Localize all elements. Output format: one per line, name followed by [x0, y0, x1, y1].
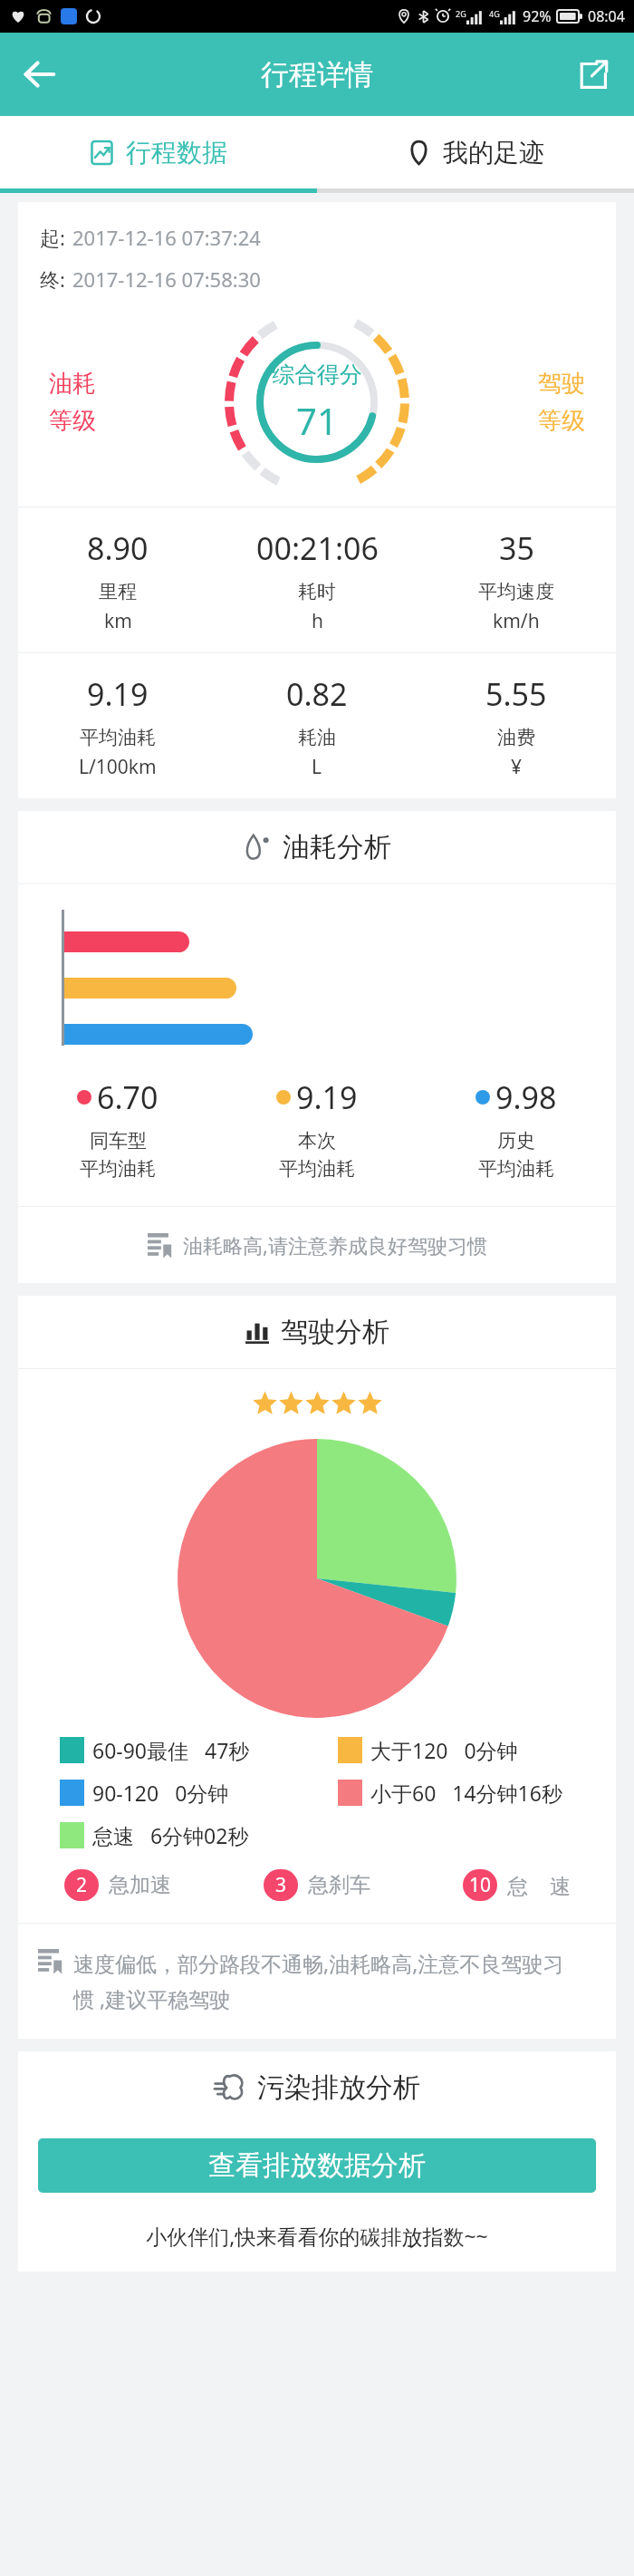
- staticText: 2: [76, 1872, 88, 1898]
- staticText: 9.19: [87, 673, 149, 715]
- staticText: 油费: [497, 726, 535, 749]
- staticText: ¥: [511, 754, 523, 780]
- staticText: 速度偏低，部分路段不通畅,油耗略高,注意不良驾驶习惯 ,建议平稳驾驶: [73, 1949, 594, 2013]
- staticText: 2017-12-16 07:58:30: [72, 265, 261, 293]
- staticText: L/100km: [79, 754, 157, 780]
- staticText: 急刹车: [308, 1872, 370, 1898]
- staticText: 本次: [298, 1129, 336, 1153]
- staticText: 等级: [49, 406, 96, 436]
- staticText: 平均速度: [478, 580, 554, 603]
- staticText: 油耗: [49, 369, 96, 399]
- button[interactable]: 我的足迹: [317, 116, 634, 188]
- staticText: 同车型: [90, 1129, 147, 1153]
- staticText: 60-90最佳 47秒: [92, 1736, 250, 1764]
- staticText: 平均油耗: [80, 726, 156, 749]
- staticText: h: [312, 608, 323, 634]
- staticText: 驾驶分析: [281, 1315, 389, 1349]
- staticText: 9.98: [495, 1076, 557, 1118]
- staticText: 2017-12-16 07:37:24: [72, 224, 261, 251]
- staticText: 怠 速: [507, 1871, 571, 1899]
- staticText: 油耗分析: [283, 830, 391, 864]
- staticText: 00:21:06: [256, 527, 379, 569]
- staticText: L: [312, 754, 322, 780]
- staticText: 污染排放分析: [257, 2070, 420, 2105]
- staticText: 我的足迹: [443, 137, 544, 169]
- staticText: 怠速 6分钟02秒: [92, 1821, 249, 1849]
- staticText: 驾驶: [538, 369, 585, 399]
- staticText: 3: [275, 1872, 287, 1898]
- staticText: 里程: [99, 580, 137, 603]
- staticText: 历史: [497, 1129, 535, 1153]
- staticText: 6.70: [97, 1076, 158, 1118]
- staticText: 平均油耗: [478, 1157, 554, 1181]
- button[interactable]: Back: [11, 46, 67, 102]
- staticText: 4G: [489, 8, 500, 19]
- staticText: 耗油: [298, 726, 336, 749]
- staticText: 小于60 14分钟16秒: [370, 1779, 562, 1807]
- button[interactable]: 行程数据: [0, 116, 317, 188]
- staticText: 行程详情: [261, 57, 373, 92]
- staticText: 等级: [538, 406, 585, 436]
- staticText: 8.90: [87, 527, 149, 569]
- staticText: 0.82: [286, 673, 348, 715]
- button[interactable]: Share: [565, 46, 621, 102]
- staticText: 急加速: [109, 1872, 171, 1898]
- staticText: 92%: [523, 6, 552, 26]
- staticText: 终:: [40, 265, 65, 293]
- staticText: 耗时: [298, 580, 336, 603]
- staticText: km: [104, 608, 132, 634]
- staticText: 10: [469, 1872, 492, 1898]
- staticText: 90-120 0分钟: [92, 1779, 229, 1807]
- staticText: 9.19: [296, 1076, 358, 1118]
- staticText: km/h: [493, 608, 540, 634]
- button[interactable]: 查看排放数据分析: [38, 2138, 596, 2193]
- staticText: 2G: [456, 8, 466, 19]
- staticText: 大于120 0分钟: [370, 1736, 518, 1764]
- staticText: 平均油耗: [279, 1157, 355, 1181]
- staticText: 综合得分: [272, 361, 362, 389]
- staticText: 71: [296, 396, 338, 445]
- staticText: 查看排放数据分析: [208, 2148, 426, 2183]
- staticText: 油耗略高,请注意养成良好驾驶习惯: [183, 1231, 487, 1259]
- staticText: 起:: [40, 224, 65, 251]
- staticText: 5.55: [485, 673, 547, 715]
- staticText: 小伙伴们,快来看看你的碳排放指数~~: [18, 2222, 616, 2250]
- staticText: 35: [499, 527, 534, 569]
- staticText: 平均油耗: [80, 1157, 156, 1181]
- staticText: 08:04: [588, 6, 625, 26]
- staticText: 行程数据: [126, 137, 227, 169]
